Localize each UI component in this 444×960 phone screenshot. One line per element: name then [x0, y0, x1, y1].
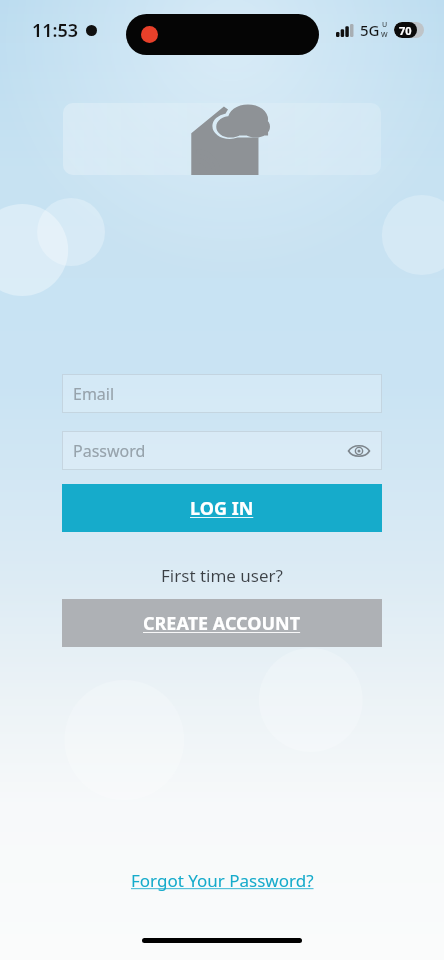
- staticText: U: [382, 20, 388, 30]
- button[interactable]: Password: [62, 431, 382, 470]
- button[interactable]: Forgot Your Password?: [0, 869, 444, 892]
- staticText: 70: [399, 23, 412, 38]
- button[interactable]: Email: [62, 374, 382, 413]
- staticText: Password: [73, 440, 146, 462]
- button[interactable]: Show password: [346, 438, 372, 464]
- staticText: Forgot Your Password?: [131, 869, 314, 892]
- staticText: LOG IN: [190, 496, 254, 521]
- staticText: CREATE ACCOUNT: [143, 611, 301, 636]
- staticText: 11:53: [32, 18, 79, 43]
- staticText: W: [381, 30, 388, 40]
- button[interactable]: CREATE ACCOUNT: [62, 599, 382, 647]
- staticText: Email: [73, 383, 115, 405]
- staticText: First time user?: [0, 564, 444, 587]
- button[interactable]: LOG IN: [62, 484, 382, 532]
- staticText: 5G: [360, 20, 380, 40]
